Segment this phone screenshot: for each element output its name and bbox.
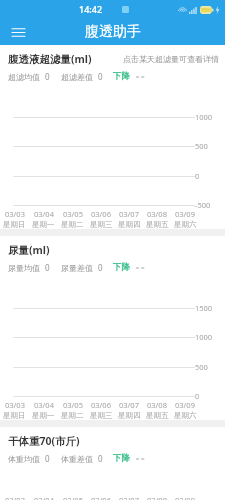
staticText: -500: [195, 200, 221, 210]
staticText: 0: [45, 71, 50, 82]
staticText: 1000: [195, 332, 221, 342]
staticText: 体重均值: [8, 454, 40, 464]
staticText: 03/09: [175, 400, 195, 410]
staticText: 尿量差值: [61, 263, 93, 273]
staticText: 0: [195, 171, 221, 181]
staticText: 星期二: [61, 411, 84, 420]
staticText: 下降: [113, 71, 130, 82]
staticText: 下降: [113, 262, 130, 273]
staticText: 03/04: [34, 495, 54, 500]
staticText: 星期四: [118, 411, 141, 420]
staticText: 500: [195, 141, 221, 151]
staticText: 03/03: [5, 209, 25, 219]
staticText: 星期日: [3, 220, 26, 229]
staticText: 03/04: [34, 209, 54, 219]
staticText: 星期三: [90, 411, 113, 420]
staticText: 下降: [113, 453, 130, 464]
button[interactable]: 尿量均值: [8, 262, 225, 273]
staticText: 星期三: [90, 220, 113, 229]
staticText: 03/07: [119, 400, 139, 410]
staticText: 点击某天超滤量可查看详情: [123, 54, 219, 64]
staticText: 干体重70(市斤): [8, 434, 80, 448]
staticText: 500: [195, 362, 221, 372]
staticText: 03/06: [91, 209, 111, 219]
staticText: 03/09: [175, 495, 195, 500]
button[interactable]: 体重均值: [8, 453, 225, 464]
staticText: 03/08: [147, 495, 167, 500]
staticText: 03/06: [91, 495, 111, 500]
staticText: 03/09: [175, 209, 195, 219]
staticText: 星期二: [61, 220, 84, 229]
staticText: 03/03: [5, 495, 25, 500]
staticText: 03/04: [34, 400, 54, 410]
staticText: 腹透液超滤量(ml): [8, 52, 92, 66]
staticText: 1000: [195, 112, 221, 122]
staticText: 星期一: [32, 411, 55, 420]
staticText: 03/07: [119, 495, 139, 500]
staticText: 星期五: [146, 220, 169, 229]
staticText: 0: [98, 71, 103, 82]
staticText: 03/03: [5, 400, 25, 410]
staticText: 0: [195, 391, 221, 401]
button[interactable]: 超滤均值: [8, 71, 225, 82]
staticText: 0: [45, 453, 50, 464]
staticText: 03/05: [63, 495, 83, 500]
staticText: 星期一: [32, 220, 55, 229]
staticText: 星期四: [118, 220, 141, 229]
staticText: 0: [98, 262, 103, 273]
staticText: 星期六: [174, 411, 197, 420]
staticText: 1500: [195, 303, 221, 313]
staticText: 0: [98, 453, 103, 464]
staticText: 尿量均值: [8, 263, 40, 273]
staticText: 星期六: [174, 220, 197, 229]
staticText: 03/05: [63, 209, 83, 219]
staticText: 03/08: [147, 400, 167, 410]
staticText: 体重差值: [61, 454, 93, 464]
staticText: 腹透助手: [85, 23, 141, 41]
staticText: 星期五: [146, 411, 169, 420]
staticText: 03/08: [147, 209, 167, 219]
staticText: 03/07: [119, 209, 139, 219]
staticText: 03/06: [91, 400, 111, 410]
button[interactable]: Menu: [6, 20, 30, 44]
staticText: 超滤差值: [61, 72, 93, 82]
staticText: 尿量(ml): [8, 243, 50, 257]
staticText: 超滤均值: [8, 72, 40, 82]
staticText: 03/05: [63, 400, 83, 410]
staticText: 14:42: [79, 3, 103, 15]
staticText: 0: [45, 262, 50, 273]
staticText: 星期日: [3, 411, 26, 420]
